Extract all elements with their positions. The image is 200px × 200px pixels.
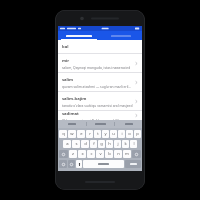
- staticText: i: [121, 131, 123, 137]
- button[interactable]: a: [63, 140, 71, 148]
- staticText: salim: [62, 77, 74, 83]
- other: Open: [134, 99, 139, 104]
- button[interactable]: Shift: [59, 150, 68, 158]
- button[interactable]: salim-bajim: [58, 92, 142, 111]
- staticText: d: [84, 141, 87, 147]
- staticText: quvam salim atashmi — sug'uran mazli eri…: [62, 84, 131, 88]
- button[interactable]: [58, 31, 100, 40]
- button[interactable]: b: [105, 150, 113, 158]
- button[interactable]: q: [59, 130, 67, 138]
- button[interactable]: s: [72, 140, 80, 148]
- staticText: a: [66, 141, 69, 147]
- other: Open: [134, 113, 139, 118]
- button[interactable]: Symbols: [59, 160, 67, 168]
- staticText: n: [117, 151, 120, 157]
- staticText: b: [108, 151, 111, 157]
- staticText: bal: [62, 44, 69, 50]
- button[interactable]: e: [77, 130, 85, 138]
- staticText: k: [124, 141, 127, 147]
- button[interactable]: r: [86, 130, 93, 138]
- button[interactable]: g: [98, 140, 105, 148]
- button[interactable]: c: [87, 150, 95, 158]
- staticText: e: [80, 131, 83, 137]
- button[interactable]: [87, 120, 114, 128]
- button[interactable]: k: [122, 140, 129, 148]
- staticText: p: [136, 131, 139, 137]
- button[interactable]: n: [114, 150, 122, 158]
- button[interactable]: u: [110, 130, 117, 138]
- staticText: m: [125, 151, 129, 157]
- staticText: sadimat: [62, 111, 79, 117]
- staticText: o: [128, 131, 131, 137]
- button[interactable]: l: [130, 140, 137, 148]
- button[interactable]: salim: [58, 73, 142, 92]
- button[interactable]: w: [68, 130, 76, 138]
- staticText: t: [97, 131, 99, 137]
- button[interactable]: i: [118, 130, 125, 138]
- other: Open: [134, 61, 139, 66]
- staticText: mir: [62, 58, 70, 64]
- button[interactable]: p: [134, 130, 141, 138]
- button[interactable]: [58, 120, 86, 128]
- staticText: salim-bajim: [62, 96, 87, 102]
- staticText: v: [99, 151, 102, 157]
- staticText: h: [108, 141, 111, 147]
- button[interactable]: h: [106, 140, 113, 148]
- button[interactable]: j: [114, 140, 121, 148]
- button[interactable]: x: [78, 150, 86, 158]
- button[interactable]: [100, 31, 142, 40]
- staticText: j: [117, 141, 119, 147]
- staticText: y: [104, 131, 107, 137]
- staticText: r: [89, 131, 91, 137]
- button[interactable]: Voice input: [76, 160, 82, 168]
- staticText: q: [62, 131, 65, 137]
- button[interactable]: mir: [58, 54, 142, 73]
- button[interactable]: sadimat: [58, 111, 142, 120]
- staticText: u: [112, 131, 115, 137]
- staticText: s: [75, 141, 78, 147]
- staticText: z: [72, 151, 74, 157]
- button[interactable]: y: [102, 130, 109, 138]
- staticText: l: [133, 141, 135, 147]
- button[interactable]: bal: [58, 40, 142, 54]
- staticText: f: [93, 141, 95, 147]
- button[interactable]: m: [123, 150, 131, 158]
- staticText: O' kuns, mertanasi Rali benomurk O' ngaz…: [62, 118, 134, 120]
- staticText: salom, Qaynoqi manguda, istasi naweracie…: [62, 65, 134, 69]
- button[interactable]: [115, 120, 142, 128]
- staticText: tanatiz o'zlara suvkiqu varsamisi aral m…: [62, 103, 133, 107]
- staticText: c: [90, 151, 93, 157]
- button[interactable]: Emoji: [68, 160, 75, 168]
- staticText: w: [70, 131, 74, 137]
- button[interactable]: v: [96, 150, 104, 158]
- staticText: x: [81, 151, 84, 157]
- button[interactable]: [125, 160, 141, 168]
- button[interactable]: f: [90, 140, 97, 148]
- button[interactable]: [83, 160, 124, 168]
- button[interactable]: d: [81, 140, 89, 148]
- button[interactable]: Backspace: [132, 150, 141, 158]
- button[interactable]: o: [126, 130, 133, 138]
- button[interactable]: t: [94, 130, 101, 138]
- staticText: g: [100, 141, 103, 147]
- other: Open: [134, 80, 139, 85]
- button[interactable]: z: [69, 150, 77, 158]
